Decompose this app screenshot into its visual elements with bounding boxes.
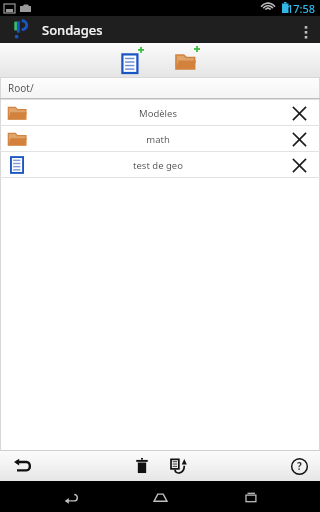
- button[interactable]: Delete math: [282, 127, 316, 151]
- button[interactable]: Root/: [8, 81, 34, 95]
- button[interactable]: Help: [286, 453, 312, 479]
- button[interactable]: Delete Modèles: [282, 101, 316, 125]
- button[interactable]: math: [0, 126, 320, 152]
- button[interactable]: More options: [292, 16, 320, 43]
- button[interactable]: Modèles: [0, 100, 320, 126]
- button[interactable]: Recents: [230, 484, 270, 510]
- staticText: test de geo: [34, 159, 282, 172]
- staticText: Modèles: [34, 107, 282, 120]
- button[interactable]: Back: [6, 453, 38, 479]
- staticText: Sondages: [42, 21, 103, 39]
- button[interactable]: Delete: [129, 453, 155, 479]
- staticText: ?: [297, 459, 302, 473]
- button[interactable]: Back: [50, 484, 90, 510]
- button[interactable]: test de geo: [0, 152, 320, 178]
- button[interactable]: Sync: [165, 453, 191, 479]
- button[interactable]: New folder: [171, 46, 205, 76]
- staticText: math: [34, 133, 282, 146]
- button[interactable]: Home: [140, 484, 180, 510]
- staticText: 17:58: [287, 1, 316, 16]
- button[interactable]: New survey: [115, 46, 149, 76]
- button[interactable]: Delete test de geo: [282, 153, 316, 177]
